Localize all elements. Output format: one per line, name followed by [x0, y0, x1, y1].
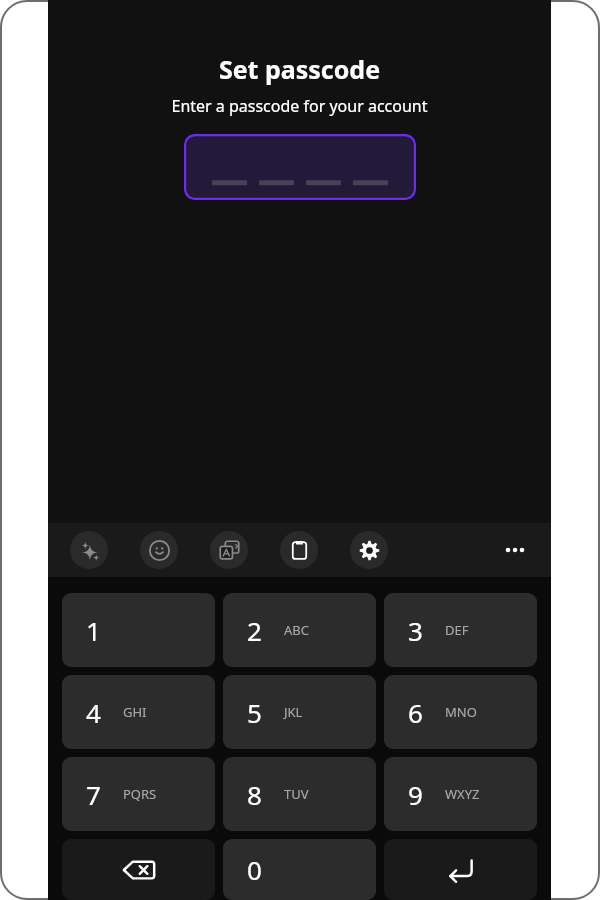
button[interactable]: 0	[223, 839, 376, 900]
button[interactable]: Translate	[210, 531, 248, 569]
staticText: Set passcode	[48, 52, 551, 86]
button[interactable]: Settings	[350, 531, 388, 569]
staticText: 3	[408, 613, 423, 648]
staticText: 7	[86, 777, 101, 812]
button[interactable]	[184, 134, 416, 200]
staticText: 5	[247, 695, 262, 730]
staticText: 8	[247, 777, 262, 812]
button[interactable]: AI suggestions	[70, 531, 108, 569]
button[interactable]: Backspace	[62, 839, 215, 900]
staticText: PQRS	[123, 785, 157, 803]
button[interactable]: 4	[62, 675, 215, 749]
staticText: Enter a passcode for your account	[48, 95, 551, 117]
staticText: JKL	[284, 703, 303, 721]
staticText: 9	[408, 777, 423, 812]
button[interactable]: 3	[384, 593, 537, 667]
button[interactable]: Enter	[384, 839, 537, 900]
button[interactable]: 8	[223, 757, 376, 831]
button[interactable]: 1	[62, 593, 215, 667]
staticText: TUV	[284, 785, 309, 803]
staticText: 0	[247, 852, 262, 887]
staticText: 2	[247, 613, 262, 648]
button[interactable]: 9	[384, 757, 537, 831]
button[interactable]: Clipboard	[280, 531, 318, 569]
staticText: ABC	[284, 621, 309, 639]
button[interactable]: 2	[223, 593, 376, 667]
button[interactable]: 6	[384, 675, 537, 749]
button[interactable]: Emoji	[140, 531, 178, 569]
staticText: 6	[408, 695, 423, 730]
button[interactable]: More options	[493, 528, 537, 572]
staticText: DEF	[445, 621, 469, 639]
staticText: 4	[86, 695, 101, 730]
button[interactable]: 5	[223, 675, 376, 749]
staticText: WXYZ	[445, 785, 480, 803]
button[interactable]: 7	[62, 757, 215, 831]
staticText: GHI	[123, 703, 147, 721]
staticText: MNO	[445, 703, 477, 721]
staticText: 1	[86, 613, 101, 648]
